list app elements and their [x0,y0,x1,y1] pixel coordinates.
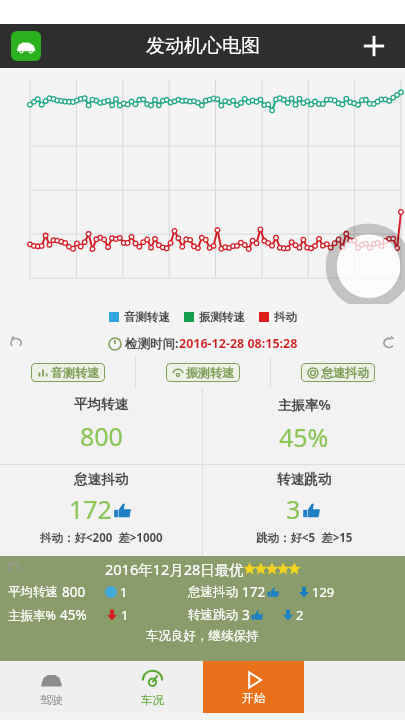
button[interactable]: 平均转速 [0,388,202,464]
staticText: 怠速抖动 [188,584,238,600]
staticText: 172 [242,583,266,601]
staticText: 800 [80,419,123,453]
button[interactable]: 主振率% [203,388,405,464]
staticText: 45% [279,420,329,454]
button[interactable]: 怠速抖动 [301,363,375,382]
staticText: 车况良好，继续保持 [146,628,259,644]
staticText: 主振率% [8,607,56,624]
button[interactable]: 开始 [203,661,304,713]
other: Previous [8,335,24,351]
staticText: 3 [286,492,301,526]
button[interactable]: Add [357,29,391,63]
staticText: 振测转速 [199,310,245,324]
staticText: 3 [242,606,250,624]
staticText: 怠速抖动 [74,471,128,488]
staticText: 1 [121,606,129,624]
staticText: 转速跳动 [277,471,331,488]
button[interactable]: 驾驶 [0,661,102,713]
staticText: 音测转速 [51,365,99,380]
button[interactable]: 转速跳动 [203,465,405,556]
staticText: 129 [312,583,335,601]
button[interactable]: 振测转速 [166,363,240,382]
staticText: 800 [62,583,86,601]
staticText: 音测转速 [124,310,170,324]
button[interactable]: 音测转速 [31,363,105,382]
staticText: 检测时间: [125,335,179,352]
other: Next [381,335,397,351]
staticText: 2016年12月28日最优 [105,559,244,579]
button[interactable]: 怠速抖动 [0,465,202,556]
staticText: 跳动：好<5 差>15 [256,530,353,546]
staticText: 45% [60,606,87,624]
staticText: 平均转速 [8,584,58,600]
button[interactable]: 车况 [102,661,203,713]
staticText: 1 [120,583,128,601]
button[interactable]: App logo [11,31,41,61]
staticText: 2 [296,606,304,624]
staticText: 发动机心电图 [146,34,260,58]
staticText: 驾驶 [40,693,63,707]
staticText: 172 [69,492,112,526]
staticText: 主振率% [278,396,331,414]
staticText: 怠速抖动 [321,365,369,380]
staticText: 2016-12-28 08:15:28 [179,335,298,352]
staticText: 抖动 [274,310,297,324]
staticText: 转速跳动 [188,607,238,623]
staticText: 平均转速 [74,396,128,413]
staticText: 振测转速 [186,365,234,380]
staticText: 开始 [242,691,265,705]
other: Previous day [6,560,22,576]
button[interactable]: Previous [0,330,405,356]
staticText: 车况 [141,693,164,707]
staticText: 抖动：好<200 差>1000 [40,530,163,546]
